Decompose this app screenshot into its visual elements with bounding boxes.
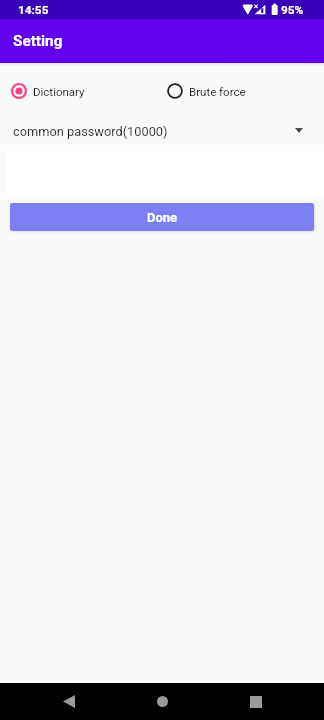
button[interactable]: common password(10000) — [0, 118, 324, 144]
staticText: Brute force — [189, 85, 246, 98]
button[interactable]: Done — [10, 203, 314, 231]
staticText: Setting — [13, 32, 63, 50]
staticText: common password(10000) — [13, 124, 168, 139]
button[interactable]: Dictionary — [11, 79, 85, 103]
staticText: 95% — [281, 3, 304, 17]
button[interactable]: Back — [52, 685, 85, 718]
staticText: Dictionary — [33, 85, 85, 98]
button[interactable]: Brute force — [167, 79, 246, 103]
staticText: 14:55 — [18, 3, 49, 17]
button[interactable]: Home — [146, 685, 179, 718]
button[interactable]: Recents — [239, 685, 272, 718]
staticText: Done — [147, 210, 178, 225]
